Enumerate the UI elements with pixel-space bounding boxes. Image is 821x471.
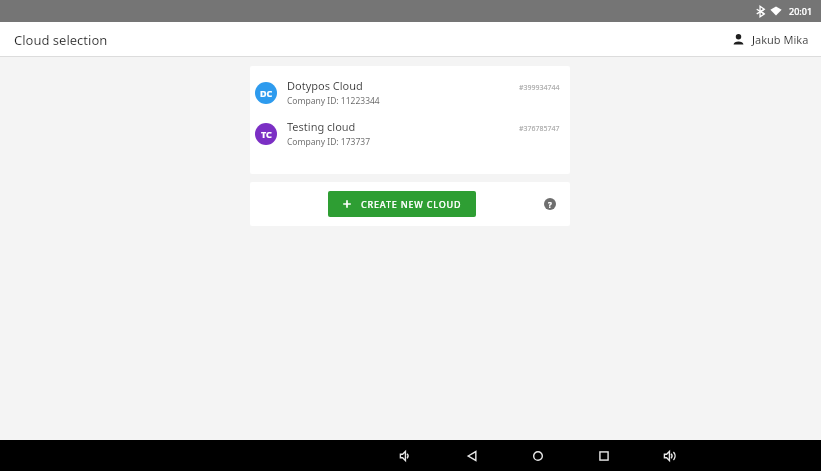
staticText: Cloud selection (14, 31, 108, 49)
staticText: ? (548, 199, 552, 210)
staticText: Company ID: 173737 (287, 136, 371, 148)
staticText: Company ID: 11223344 (287, 95, 380, 107)
staticText: Testing cloud (287, 119, 356, 134)
staticText: CREATE NEW CLOUD (361, 198, 462, 210)
staticText: TC (261, 128, 272, 140)
button[interactable]: Account (732, 32, 809, 47)
staticText: Jakub Mika (752, 32, 809, 47)
button[interactable]: Recents (588, 440, 620, 471)
button[interactable]: CREATE NEW CLOUD (328, 191, 476, 217)
button[interactable]: Back (456, 440, 488, 471)
other: Account (732, 33, 745, 46)
staticText: Dotypos Cloud (287, 78, 363, 93)
button[interactable]: Home (522, 440, 554, 471)
staticText: #376785747 (519, 124, 560, 134)
button[interactable]: Volume up (654, 440, 686, 471)
staticText: #399934744 (519, 83, 560, 93)
button[interactable]: DC (250, 72, 570, 113)
button[interactable]: Help (541, 195, 559, 213)
button[interactable]: TC (250, 113, 570, 154)
button[interactable]: Volume down (390, 440, 422, 471)
staticText: DC (260, 87, 273, 99)
staticText: 20:01 (789, 5, 813, 17)
